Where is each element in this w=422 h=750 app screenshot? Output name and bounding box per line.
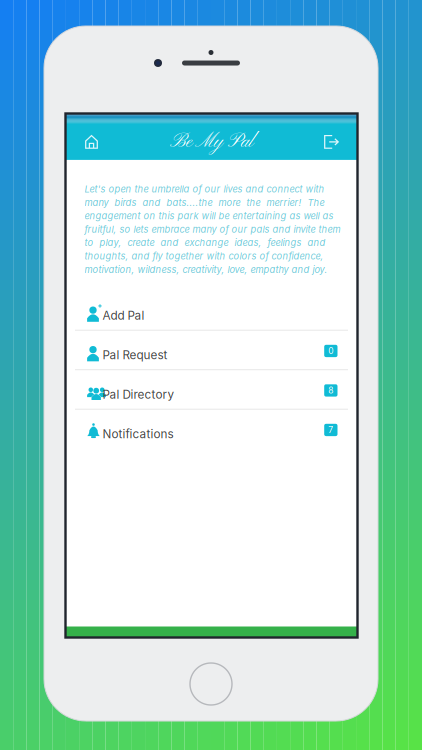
staticText: Notifications: [103, 427, 174, 441]
staticText: Add Pal: [103, 308, 145, 323]
button[interactable]: Home: [71, 124, 111, 160]
staticText: fruitful, so lets embrace many of our pa…: [84, 224, 340, 235]
staticText: engagement on this park will be entertai…: [84, 210, 333, 222]
button[interactable]: Add Pal: [65, 291, 357, 330]
staticText: many birds and bats....the more the merr…: [84, 197, 324, 208]
staticText: 0: [328, 346, 333, 356]
staticText: Let's open the umbrella of our lives and…: [84, 183, 324, 195]
staticText: Be My Pal: [170, 129, 253, 154]
staticText: thoughts, and fly together with colors o…: [84, 250, 323, 262]
staticText: to play, create and exchange ideas, feel…: [84, 237, 325, 248]
button[interactable]: Log out: [311, 124, 351, 160]
staticText: 8: [328, 385, 333, 396]
button[interactable]: Pal Request: [65, 331, 357, 369]
button[interactable]: Notifications: [65, 410, 357, 448]
staticText: 7: [328, 425, 333, 435]
staticText: Pal Directory: [103, 387, 175, 402]
button[interactable]: Pal Directory: [65, 370, 357, 409]
staticText: Pal Request: [103, 348, 168, 362]
staticText: motivation, wildness, creativity, love, …: [84, 264, 327, 275]
